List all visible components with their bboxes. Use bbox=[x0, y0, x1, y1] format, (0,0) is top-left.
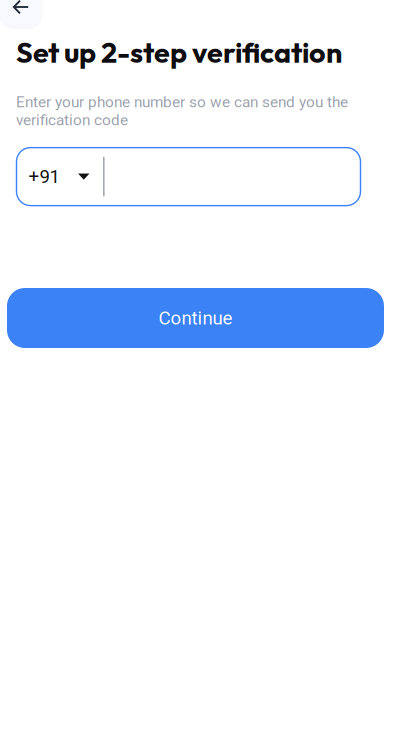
button[interactable]: Back bbox=[0, 0, 43, 29]
staticText: +91 bbox=[28, 166, 59, 188]
staticText: Set up 2-step verification bbox=[16, 34, 342, 70]
button[interactable]: Continue bbox=[7, 288, 384, 348]
staticText: Continue bbox=[158, 307, 232, 329]
staticText: Enter your phone number so we can send y… bbox=[16, 93, 348, 129]
